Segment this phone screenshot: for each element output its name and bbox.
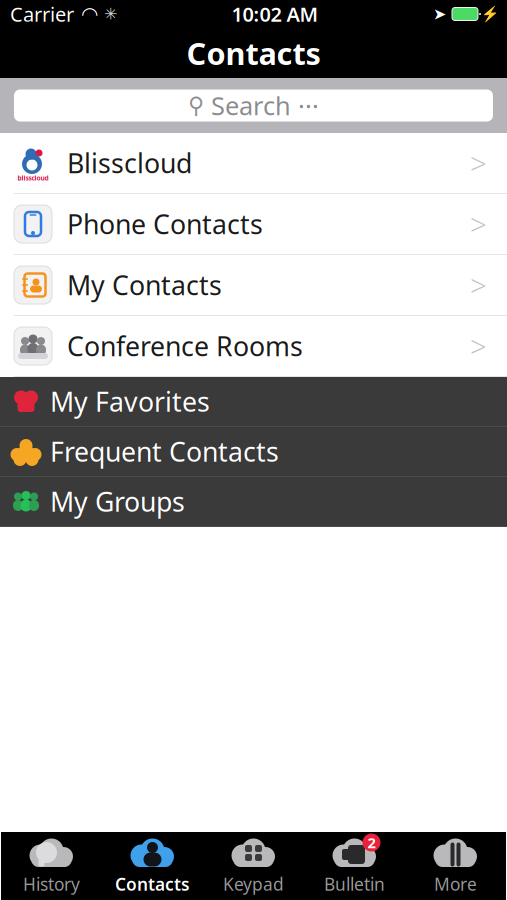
staticText: Bulletin <box>324 872 385 895</box>
staticText: Conference Rooms <box>67 328 303 364</box>
button[interactable]: Contacts <box>102 832 203 900</box>
staticText: > <box>470 204 487 243</box>
button[interactable]: History <box>1 832 102 900</box>
button[interactable]: More <box>405 832 506 900</box>
staticText: > <box>470 265 487 304</box>
button[interactable]: My Groups <box>0 477 507 527</box>
staticText: My Groups <box>50 484 185 519</box>
staticText: My Contacts <box>67 267 222 303</box>
staticText: Frequent Contacts <box>50 434 279 469</box>
staticText: Keypad <box>223 872 284 895</box>
staticText: ◠ <box>81 3 98 25</box>
button[interactable]: Phone Contacts <box>0 194 507 255</box>
button[interactable]: Keypad <box>203 832 304 900</box>
staticText: Phone Contacts <box>67 206 263 242</box>
staticText: Contacts <box>186 33 320 73</box>
button[interactable]: My Favorites <box>0 377 507 427</box>
staticText: 10:02 AM <box>231 1 318 27</box>
staticText: History <box>23 872 80 895</box>
staticText: Carrier <box>10 1 74 27</box>
staticText: 2 <box>367 833 375 852</box>
button[interactable]: blisscloud <box>0 133 507 194</box>
staticText: More <box>434 872 477 895</box>
staticText: ⚡ <box>481 6 499 22</box>
staticText: ⚲ <box>188 93 205 118</box>
staticText: ➤ <box>433 5 446 23</box>
staticText: > <box>470 326 487 365</box>
staticText: Contacts <box>115 872 190 895</box>
button[interactable]: My Contacts <box>0 255 507 316</box>
staticText: ✳ <box>104 5 117 23</box>
button[interactable]: Conference Rooms <box>0 316 507 377</box>
staticText: Search ··· <box>211 89 319 122</box>
staticText: Blisscloud <box>67 145 192 181</box>
button[interactable]: 2 <box>304 832 405 900</box>
staticText: My Favorites <box>50 384 210 419</box>
staticText: > <box>470 143 487 182</box>
button[interactable]: Frequent Contacts <box>0 427 507 477</box>
staticText: blisscloud <box>17 174 48 182</box>
